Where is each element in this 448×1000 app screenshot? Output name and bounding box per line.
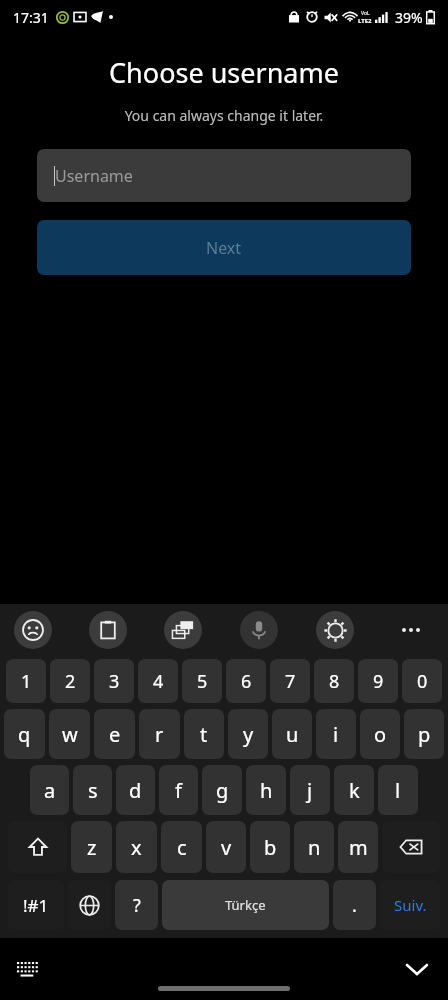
- staticText: 1: [21, 669, 32, 694]
- button[interactable]: a: [30, 765, 69, 815]
- button[interactable]: Keyboard layout: [164, 611, 202, 649]
- staticText: 3: [109, 669, 120, 694]
- button[interactable]: k: [334, 765, 374, 815]
- button[interactable]: h: [246, 765, 286, 815]
- button[interactable]: 2: [50, 659, 90, 703]
- button[interactable]: Emoji: [14, 611, 52, 649]
- button[interactable]: 1: [6, 659, 46, 703]
- button[interactable]: Switch keyboard: [8, 949, 48, 989]
- button[interactable]: s: [73, 765, 112, 815]
- button[interactable]: Shift: [8, 821, 67, 873]
- staticText: LTE2: [358, 17, 372, 25]
- staticText: Türkçe: [225, 896, 266, 914]
- button[interactable]: 9: [358, 659, 398, 703]
- button[interactable]: w: [49, 709, 90, 759]
- button[interactable]: Settings: [316, 611, 354, 649]
- button[interactable]: 3: [94, 659, 134, 703]
- button[interactable]: t: [184, 709, 224, 759]
- staticText: c: [177, 834, 187, 861]
- staticText: .: [352, 893, 357, 918]
- button[interactable]: r: [139, 709, 180, 759]
- staticText: 6: [241, 669, 252, 694]
- button[interactable]: Voice input: [240, 611, 278, 649]
- staticText: a: [44, 777, 56, 804]
- staticText: t: [200, 721, 208, 748]
- button[interactable]: u: [272, 709, 312, 759]
- button[interactable]: !#1: [8, 880, 64, 930]
- staticText: Choose username: [0, 54, 448, 91]
- button[interactable]: o: [360, 709, 400, 759]
- staticText: 17:31: [13, 8, 49, 27]
- staticText: h: [260, 777, 273, 804]
- staticText: i: [333, 721, 339, 748]
- button[interactable]: m: [338, 821, 378, 873]
- staticText: Suiv.: [394, 895, 427, 915]
- staticText: e: [109, 721, 121, 748]
- staticText: Username: [55, 165, 133, 187]
- staticText: 9: [373, 669, 384, 694]
- button[interactable]: n: [294, 821, 334, 873]
- staticText: ?: [133, 893, 141, 918]
- staticText: o: [374, 721, 387, 748]
- button[interactable]: y: [228, 709, 268, 759]
- staticText: l: [395, 777, 401, 804]
- staticText: v: [221, 834, 232, 861]
- button[interactable]: z: [71, 821, 112, 873]
- staticText: j: [307, 777, 313, 804]
- staticText: r: [155, 721, 164, 748]
- staticText: u: [286, 721, 299, 748]
- button[interactable]: j: [290, 765, 330, 815]
- button[interactable]: 7: [270, 659, 310, 703]
- staticText: You can always change it later.: [0, 106, 448, 125]
- button[interactable]: Türkçe: [162, 880, 329, 930]
- staticText: 5: [197, 669, 208, 694]
- button[interactable]: 4: [138, 659, 178, 703]
- button[interactable]: Clipboard: [89, 611, 127, 649]
- staticText: y: [243, 721, 254, 748]
- button[interactable]: Suiv.: [380, 880, 440, 930]
- button[interactable]: 6: [226, 659, 266, 703]
- button[interactable]: b: [250, 821, 290, 873]
- button[interactable]: p: [404, 709, 444, 759]
- button[interactable]: 0: [402, 659, 442, 703]
- staticText: 4: [153, 669, 164, 694]
- staticText: Next: [206, 237, 242, 259]
- button[interactable]: f: [159, 765, 198, 815]
- staticText: k: [349, 777, 360, 804]
- button[interactable]: e: [94, 709, 135, 759]
- staticText: n: [308, 834, 321, 861]
- staticText: 7: [285, 669, 296, 694]
- button[interactable]: .: [333, 880, 376, 930]
- button[interactable]: 5: [182, 659, 222, 703]
- button[interactable]: Backspace: [382, 821, 440, 873]
- button[interactable]: l: [378, 765, 418, 815]
- button[interactable]: Change language: [68, 880, 111, 930]
- staticText: w: [62, 721, 78, 748]
- button[interactable]: q: [4, 709, 45, 759]
- staticText: d: [129, 777, 142, 804]
- staticText: !#1: [23, 894, 49, 917]
- button[interactable]: d: [116, 765, 155, 815]
- staticText: VoL: [361, 10, 370, 17]
- staticText: q: [18, 721, 31, 748]
- button[interactable]: i: [316, 709, 356, 759]
- staticText: 8: [329, 669, 340, 694]
- button[interactable]: 8: [314, 659, 354, 703]
- button[interactable]: x: [116, 821, 157, 873]
- button[interactable]: v: [206, 821, 246, 873]
- staticText: f: [175, 777, 182, 804]
- staticText: s: [88, 777, 98, 804]
- staticText: p: [418, 721, 431, 748]
- button[interactable]: Hide keyboard: [396, 948, 438, 990]
- staticText: 39%: [395, 8, 423, 27]
- staticText: m: [349, 834, 368, 861]
- staticText: b: [264, 834, 277, 861]
- staticText: x: [131, 834, 142, 861]
- button[interactable]: Next: [37, 220, 411, 275]
- button[interactable]: Username: [37, 149, 411, 202]
- button[interactable]: ?: [115, 880, 158, 930]
- staticText: 0: [417, 669, 428, 694]
- button[interactable]: More options: [392, 611, 430, 649]
- button[interactable]: g: [202, 765, 242, 815]
- button[interactable]: c: [161, 821, 202, 873]
